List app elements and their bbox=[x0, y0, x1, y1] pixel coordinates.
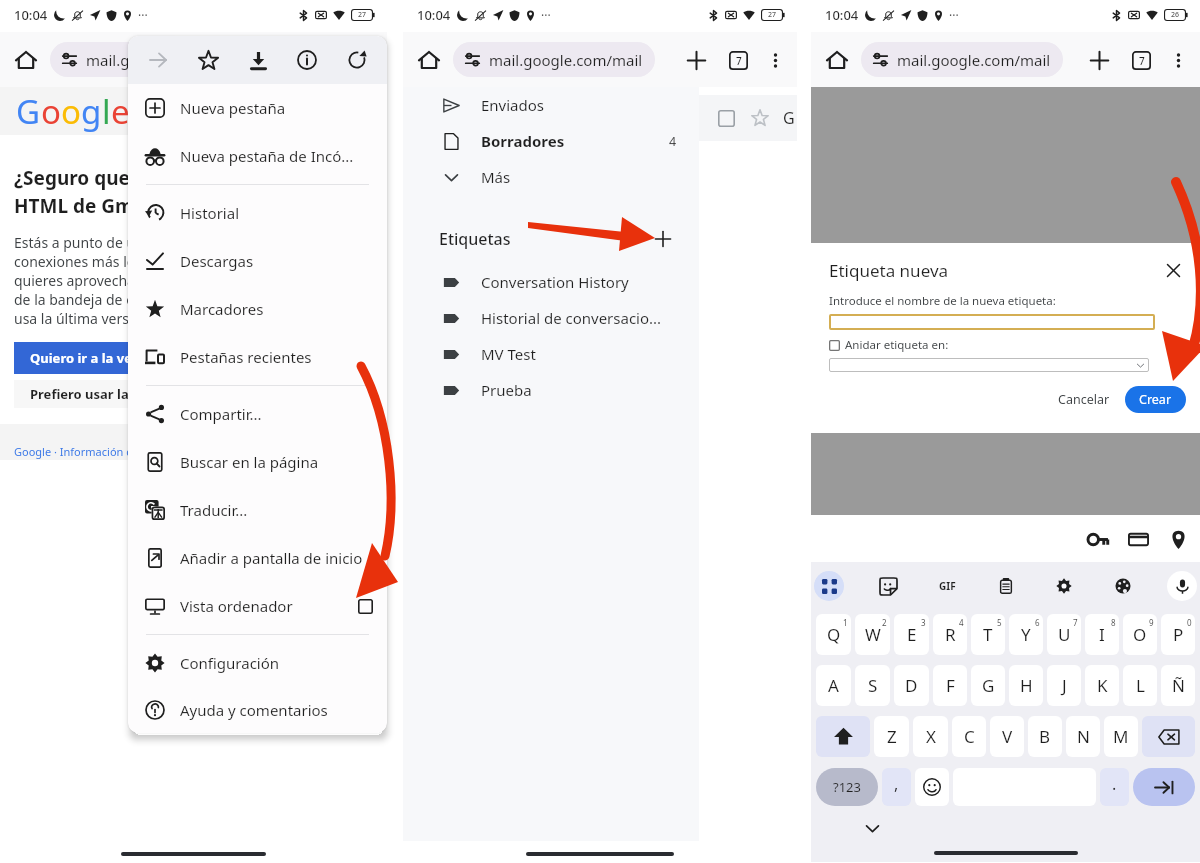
button[interactable]: Crear bbox=[1125, 386, 1186, 413]
button[interactable]: C bbox=[952, 716, 986, 757]
button[interactable]: New tab bbox=[675, 39, 717, 81]
button[interactable]: Reload bbox=[337, 40, 377, 80]
button[interactable]: mail.google.com/mail bbox=[453, 42, 655, 77]
button[interactable]: Nueva pestaña bbox=[128, 84, 387, 132]
button[interactable]: Download bbox=[238, 40, 278, 80]
button[interactable]: I bbox=[1085, 614, 1119, 655]
button[interactable]: Buscar en la página bbox=[128, 438, 387, 486]
button[interactable]: Historial bbox=[128, 189, 387, 237]
staticText: Nueva pestaña de Incó... bbox=[180, 146, 354, 166]
button[interactable]: Y bbox=[1009, 614, 1043, 655]
staticText: G bbox=[982, 674, 995, 697]
button[interactable]: Bookmark bbox=[188, 40, 228, 80]
button[interactable]: Pestañas recientes bbox=[128, 333, 387, 381]
button[interactable]: MV Test bbox=[403, 336, 699, 372]
button[interactable]: More options bbox=[1162, 44, 1194, 76]
button[interactable]: Prefiero usar la ve bbox=[14, 380, 387, 408]
button[interactable]: Payment methods bbox=[1122, 523, 1154, 555]
button[interactable]: R bbox=[933, 614, 967, 655]
staticText: 7 bbox=[736, 54, 742, 68]
button[interactable]: Prueba bbox=[403, 372, 699, 408]
button[interactable]: E bbox=[894, 614, 929, 655]
staticText: 7 bbox=[1139, 54, 1145, 68]
button[interactable]: . bbox=[1100, 768, 1129, 806]
button[interactable]: Theme bbox=[1108, 571, 1138, 601]
button[interactable]: P bbox=[1161, 614, 1195, 655]
button[interactable]: Nueva pestaña de Incó... bbox=[128, 132, 387, 180]
button[interactable]: Toolbar bbox=[814, 571, 844, 601]
button[interactable]: Passwords bbox=[1082, 523, 1114, 555]
button[interactable]: Home bbox=[6, 40, 46, 80]
button[interactable]: Voice input bbox=[1167, 571, 1197, 601]
button[interactable]: Ayuda y comentarios bbox=[128, 687, 387, 733]
button[interactable]: A bbox=[816, 665, 851, 706]
button[interactable]: Forward bbox=[138, 40, 178, 80]
button[interactable]: Tabs bbox=[717, 39, 759, 81]
button[interactable]: V bbox=[990, 716, 1024, 757]
button[interactable]: Más bbox=[403, 159, 699, 195]
button[interactable]: Conversation History bbox=[403, 264, 699, 300]
button[interactable]: Shift bbox=[816, 716, 870, 757]
button[interactable]: Enter bbox=[1133, 768, 1195, 806]
button[interactable]: Historial de conversacio... bbox=[403, 300, 699, 336]
button[interactable]: G bbox=[971, 665, 1005, 706]
button[interactable]: Addresses bbox=[1162, 523, 1194, 555]
button[interactable]: New tab bbox=[1078, 39, 1120, 81]
button[interactable]: Borradores bbox=[403, 123, 699, 159]
button[interactable]: O bbox=[1123, 614, 1157, 655]
button[interactable]: Stickers bbox=[873, 571, 903, 601]
button[interactable]: Home bbox=[409, 40, 449, 80]
button[interactable]: Compartir... bbox=[128, 390, 387, 438]
button[interactable]: W bbox=[855, 614, 890, 655]
button[interactable]: Traducir... bbox=[128, 486, 387, 534]
button[interactable]: Descargas bbox=[128, 237, 387, 285]
button[interactable]: X bbox=[913, 716, 948, 757]
button[interactable]: Hide keyboard bbox=[860, 816, 884, 840]
button[interactable]: Vista ordenador bbox=[128, 582, 387, 630]
button[interactable] bbox=[829, 314, 1155, 330]
button[interactable]: T bbox=[971, 614, 1005, 655]
button[interactable]: F bbox=[933, 665, 967, 706]
staticText: Cancelar bbox=[1058, 391, 1110, 408]
button[interactable] bbox=[829, 358, 1149, 372]
button[interactable]: Añadir a pantalla de inicio bbox=[128, 534, 387, 582]
button[interactable]: GIF bbox=[932, 571, 962, 601]
button[interactable]: Emoji bbox=[915, 768, 949, 806]
button[interactable]: Q bbox=[816, 614, 851, 655]
staticText: 10:04 bbox=[825, 6, 859, 24]
button[interactable]: Z bbox=[874, 716, 909, 757]
button[interactable]: Backspace bbox=[1142, 716, 1195, 757]
button[interactable]: , bbox=[882, 768, 911, 806]
button[interactable]: mail.google.com/mail bbox=[861, 42, 1063, 77]
button[interactable]: Marcadores bbox=[128, 285, 387, 333]
staticText: 5 bbox=[997, 617, 1002, 628]
button[interactable]: D bbox=[894, 665, 929, 706]
button[interactable]: Home bbox=[817, 40, 857, 80]
button[interactable]: K bbox=[1085, 665, 1119, 706]
button[interactable]: M bbox=[1104, 716, 1138, 757]
staticText: , bbox=[894, 773, 899, 795]
button[interactable]: More options bbox=[759, 44, 791, 76]
button[interactable]: ?123 bbox=[816, 768, 878, 806]
button[interactable]: U bbox=[1047, 614, 1081, 655]
button[interactable]: mail.g bbox=[50, 42, 381, 77]
button[interactable]: Close bbox=[1160, 257, 1186, 283]
button[interactable]: L bbox=[1123, 665, 1157, 706]
button[interactable]: B bbox=[1028, 716, 1062, 757]
button[interactable]: Page info bbox=[287, 40, 327, 80]
button[interactable]: N bbox=[1066, 716, 1100, 757]
button[interactable]: Ñ bbox=[1161, 665, 1195, 706]
button[interactable]: Tabs bbox=[1120, 39, 1162, 81]
button[interactable]: Add label bbox=[649, 225, 677, 253]
staticText: o bbox=[61, 89, 81, 134]
button[interactable]: Quiero ir a la vers bbox=[14, 342, 387, 374]
button[interactable]: Enviados bbox=[403, 87, 699, 123]
button[interactable]: Cancelar bbox=[1050, 386, 1118, 413]
button[interactable]: S bbox=[855, 665, 890, 706]
button[interactable]: Configuración bbox=[128, 639, 387, 687]
button[interactable]: Settings bbox=[1049, 571, 1079, 601]
button[interactable]: J bbox=[1047, 665, 1081, 706]
button[interactable]: Clipboard bbox=[991, 571, 1021, 601]
button[interactable]: H bbox=[1009, 665, 1043, 706]
